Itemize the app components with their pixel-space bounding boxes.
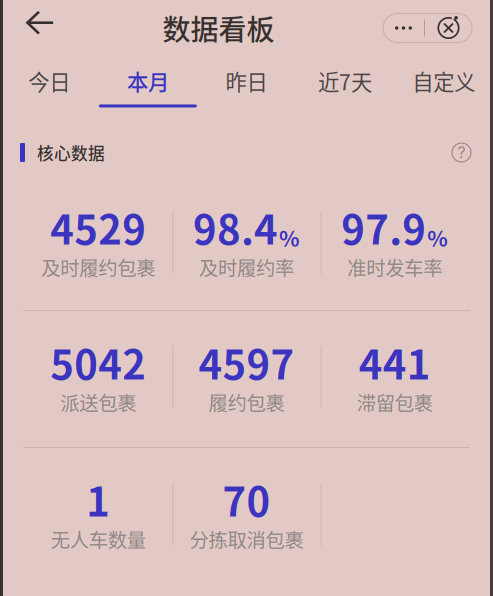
staticText: 98.4 <box>193 198 278 256</box>
button[interactable]: Back <box>0 4 69 51</box>
button[interactable]: Close <box>425 13 472 42</box>
staticText: 履约包裹 <box>208 388 284 416</box>
button[interactable]: More <box>383 13 424 42</box>
button[interactable]: 昨日 <box>197 56 296 110</box>
button[interactable]: 今日 <box>0 56 99 110</box>
staticText: 数据看板 <box>162 8 274 48</box>
button[interactable]: 近7天 <box>296 56 394 110</box>
staticText: 近7天 <box>318 66 372 96</box>
staticText: 准时发车率 <box>347 253 442 281</box>
staticText: 及时履约包裹 <box>41 253 155 281</box>
staticText: % <box>279 222 300 253</box>
staticText: 昨日 <box>225 66 267 96</box>
staticText: 5042 <box>50 333 146 391</box>
staticText: 97.9 <box>341 198 426 256</box>
staticText: 4597 <box>198 333 294 391</box>
button[interactable]: Help <box>442 133 481 172</box>
button[interactable]: 自定义 <box>394 56 493 110</box>
staticText: ? <box>457 143 465 162</box>
staticText: 及时履约率 <box>199 253 294 281</box>
staticText: 4529 <box>50 198 146 256</box>
staticText: 1 <box>86 470 110 528</box>
staticText: 派送包裹 <box>60 388 136 416</box>
staticText: 今日 <box>28 66 70 96</box>
staticText: % <box>427 222 448 253</box>
staticText: 441 <box>359 333 431 391</box>
staticText: 无人车数量 <box>51 525 146 553</box>
staticText: 本月 <box>127 66 169 96</box>
staticText: 滞留包裹 <box>357 388 433 416</box>
staticText: 自定义 <box>412 66 475 96</box>
staticText: 核心数据 <box>37 140 105 164</box>
staticText: 70 <box>222 470 270 528</box>
staticText: 分拣取消包裹 <box>189 525 303 553</box>
button[interactable]: 本月 <box>99 56 197 110</box>
